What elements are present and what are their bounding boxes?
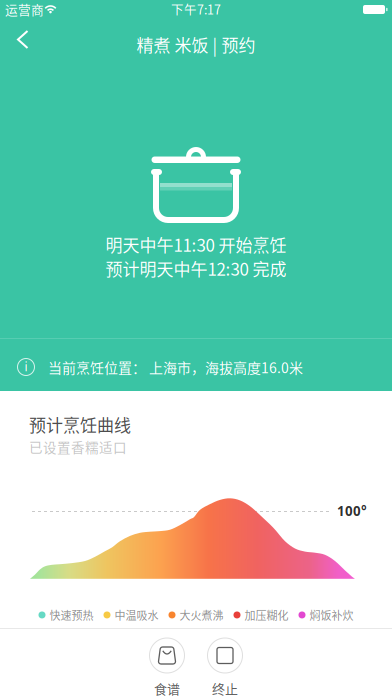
staticText: 明天中午11:30 开始烹饪 <box>105 232 286 257</box>
button[interactable]: 返回 <box>0 18 44 61</box>
staticText: 精煮 米饭 | 预约 <box>136 32 255 57</box>
staticText: 下午7:17 <box>171 0 221 18</box>
staticText: 当前烹饪位置： 上海市，海拔高度16.0米 <box>48 357 303 377</box>
staticText: 终止 <box>212 679 238 696</box>
button[interactable]: 食谱 <box>149 638 184 696</box>
staticText: 加压糊化 <box>244 607 288 623</box>
staticText: 快速预热 <box>49 607 93 623</box>
staticText: 运营商 <box>5 0 44 18</box>
staticText: i <box>24 358 27 374</box>
staticText: 已设置香糯适口 <box>29 437 127 456</box>
staticText: 大火煮沸 <box>179 607 223 623</box>
staticText: 中温吸水 <box>114 607 158 623</box>
staticText: 100° <box>337 502 367 520</box>
staticText: 食谱 <box>154 679 180 696</box>
staticText: 焖饭补炊 <box>309 607 353 623</box>
staticText: 预计明天中午12:30 完成 <box>105 256 286 281</box>
button[interactable]: 终止 <box>207 638 242 696</box>
staticText: 预计烹饪曲线 <box>29 412 131 437</box>
